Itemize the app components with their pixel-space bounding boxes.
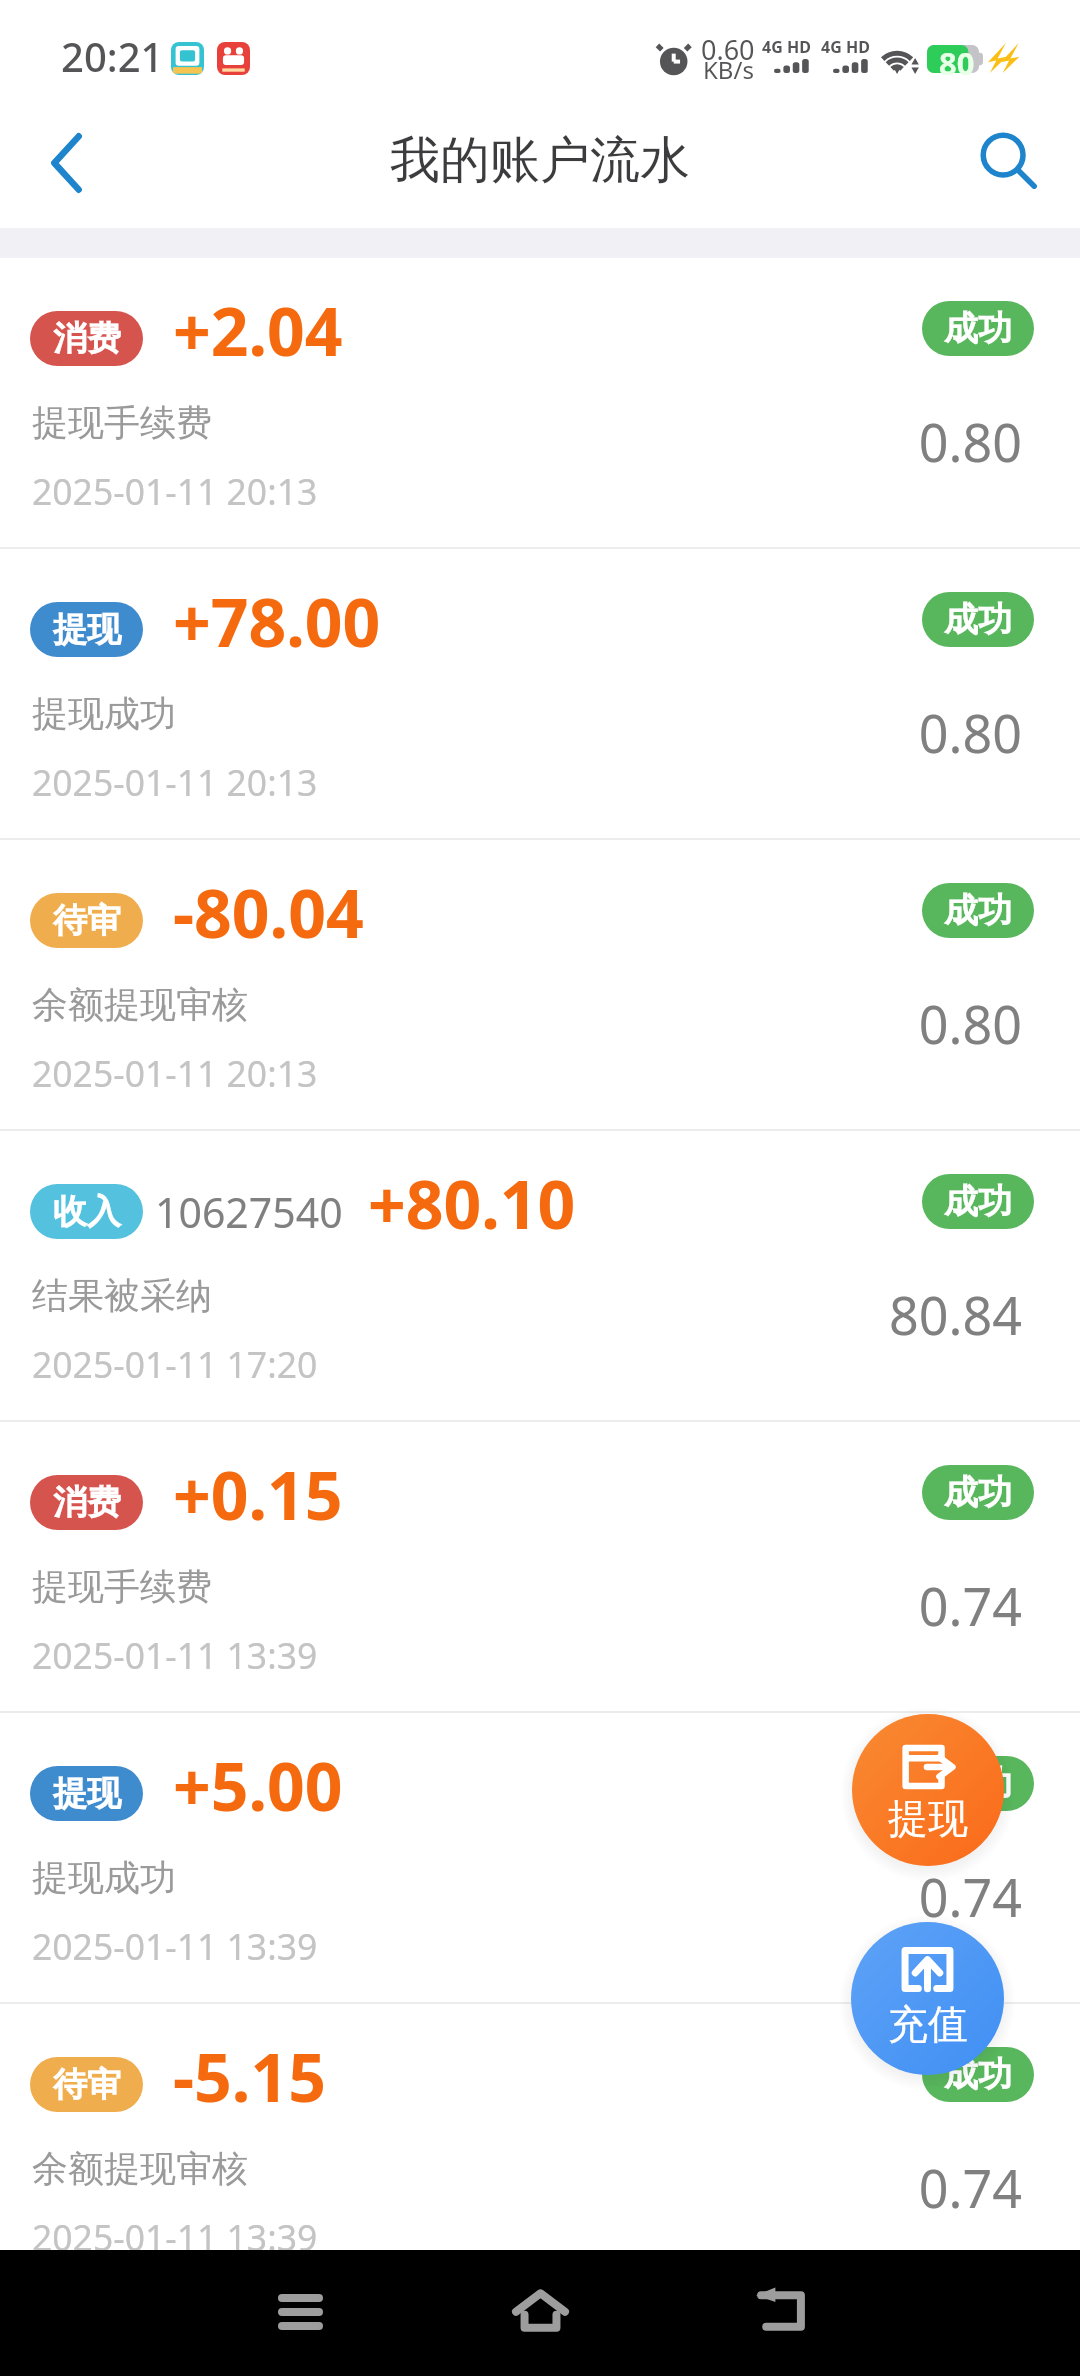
staticText: -80.04 bbox=[173, 867, 364, 957]
staticText: 10627540 bbox=[155, 1184, 343, 1240]
button[interactable]: Home bbox=[480, 2253, 600, 2373]
button[interactable]: 消费 bbox=[0, 1422, 1080, 1713]
staticText: 待审 bbox=[53, 2063, 121, 2106]
staticText: 80.84 bbox=[700, 1279, 1022, 1350]
staticText: 2025-01-11 20:13 bbox=[32, 758, 318, 806]
staticText: 80 bbox=[939, 42, 975, 84]
staticText: +0.15 bbox=[173, 1449, 343, 1539]
staticText: 充值 bbox=[888, 1999, 968, 2049]
staticText: 20:21 bbox=[61, 29, 164, 83]
button[interactable]: 待审 bbox=[0, 2004, 1080, 2295]
staticText: +5.00 bbox=[173, 1740, 343, 1830]
staticText: 0.60 bbox=[701, 31, 755, 68]
staticText: 2025-01-11 20:13 bbox=[32, 467, 318, 515]
button[interactable]: Recents bbox=[240, 2253, 360, 2373]
staticText: 结果被采纳 bbox=[32, 1273, 212, 1318]
staticText: 2025-01-11 13:39 bbox=[32, 1922, 318, 1970]
button[interactable]: Search bbox=[950, 110, 1068, 228]
staticText: 提现 bbox=[53, 608, 121, 651]
button[interactable]: 充值 bbox=[851, 1922, 1004, 2075]
button[interactable]: 收入 bbox=[0, 1131, 1080, 1422]
staticText: 0.74 bbox=[700, 1861, 1022, 1932]
staticText: 0.80 bbox=[700, 406, 1022, 477]
staticText: 成功 bbox=[944, 889, 1012, 932]
staticText: 0.74 bbox=[700, 2152, 1022, 2223]
staticText: 0.80 bbox=[700, 988, 1022, 1059]
staticText: 成功 bbox=[944, 1762, 1012, 1805]
button[interactable]: Back bbox=[720, 2253, 840, 2373]
staticText: 消费 bbox=[53, 317, 121, 360]
button[interactable]: Back bbox=[6, 110, 124, 228]
button[interactable]: 提现 bbox=[0, 549, 1080, 840]
staticText: 消费 bbox=[53, 1481, 121, 1524]
staticText: 提现成功 bbox=[32, 691, 176, 736]
staticText: 成功 bbox=[944, 1180, 1012, 1223]
staticText: 提现 bbox=[53, 1772, 121, 1815]
staticText: 4G HD bbox=[821, 36, 870, 58]
staticText: 成功 bbox=[944, 598, 1012, 641]
staticText: 成功 bbox=[944, 307, 1012, 350]
staticText: +80.10 bbox=[368, 1158, 576, 1248]
staticText: 提现成功 bbox=[32, 1855, 176, 1900]
staticText: +2.04 bbox=[173, 285, 343, 375]
button[interactable]: 提现 bbox=[0, 1713, 1080, 2004]
staticText: KB/s bbox=[703, 53, 754, 86]
staticText: 成功 bbox=[944, 1471, 1012, 1514]
staticText: 我的账户流水 bbox=[390, 129, 690, 192]
button[interactable]: 消费 bbox=[0, 258, 1080, 549]
staticText: 余额提现审核 bbox=[32, 2146, 248, 2191]
staticText: 成功 bbox=[944, 2053, 1012, 2096]
staticText: 0.74 bbox=[700, 1570, 1022, 1641]
staticText: 提现 bbox=[888, 1793, 968, 1843]
staticText: 2025-01-11 17:20 bbox=[32, 1340, 318, 1388]
button[interactable]: 待审 bbox=[0, 840, 1080, 1131]
staticText: 4G HD bbox=[762, 36, 811, 58]
staticText: 2025-01-11 20:13 bbox=[32, 1049, 318, 1097]
button[interactable]: 提现 bbox=[852, 1714, 1004, 1866]
staticText: 待审 bbox=[53, 899, 121, 942]
staticText: +78.00 bbox=[173, 576, 381, 666]
staticText: -5.15 bbox=[173, 2031, 326, 2121]
staticText: 提现手续费 bbox=[32, 1564, 212, 1609]
staticText: 0.80 bbox=[700, 697, 1022, 768]
staticText: 余额提现审核 bbox=[32, 982, 248, 1027]
staticText: 收入 bbox=[53, 1190, 121, 1233]
staticText: 2025-01-11 13:39 bbox=[32, 1631, 318, 1679]
staticText: 提现手续费 bbox=[32, 400, 212, 445]
staticText: 2025-01-11 13:39 bbox=[32, 2213, 318, 2261]
